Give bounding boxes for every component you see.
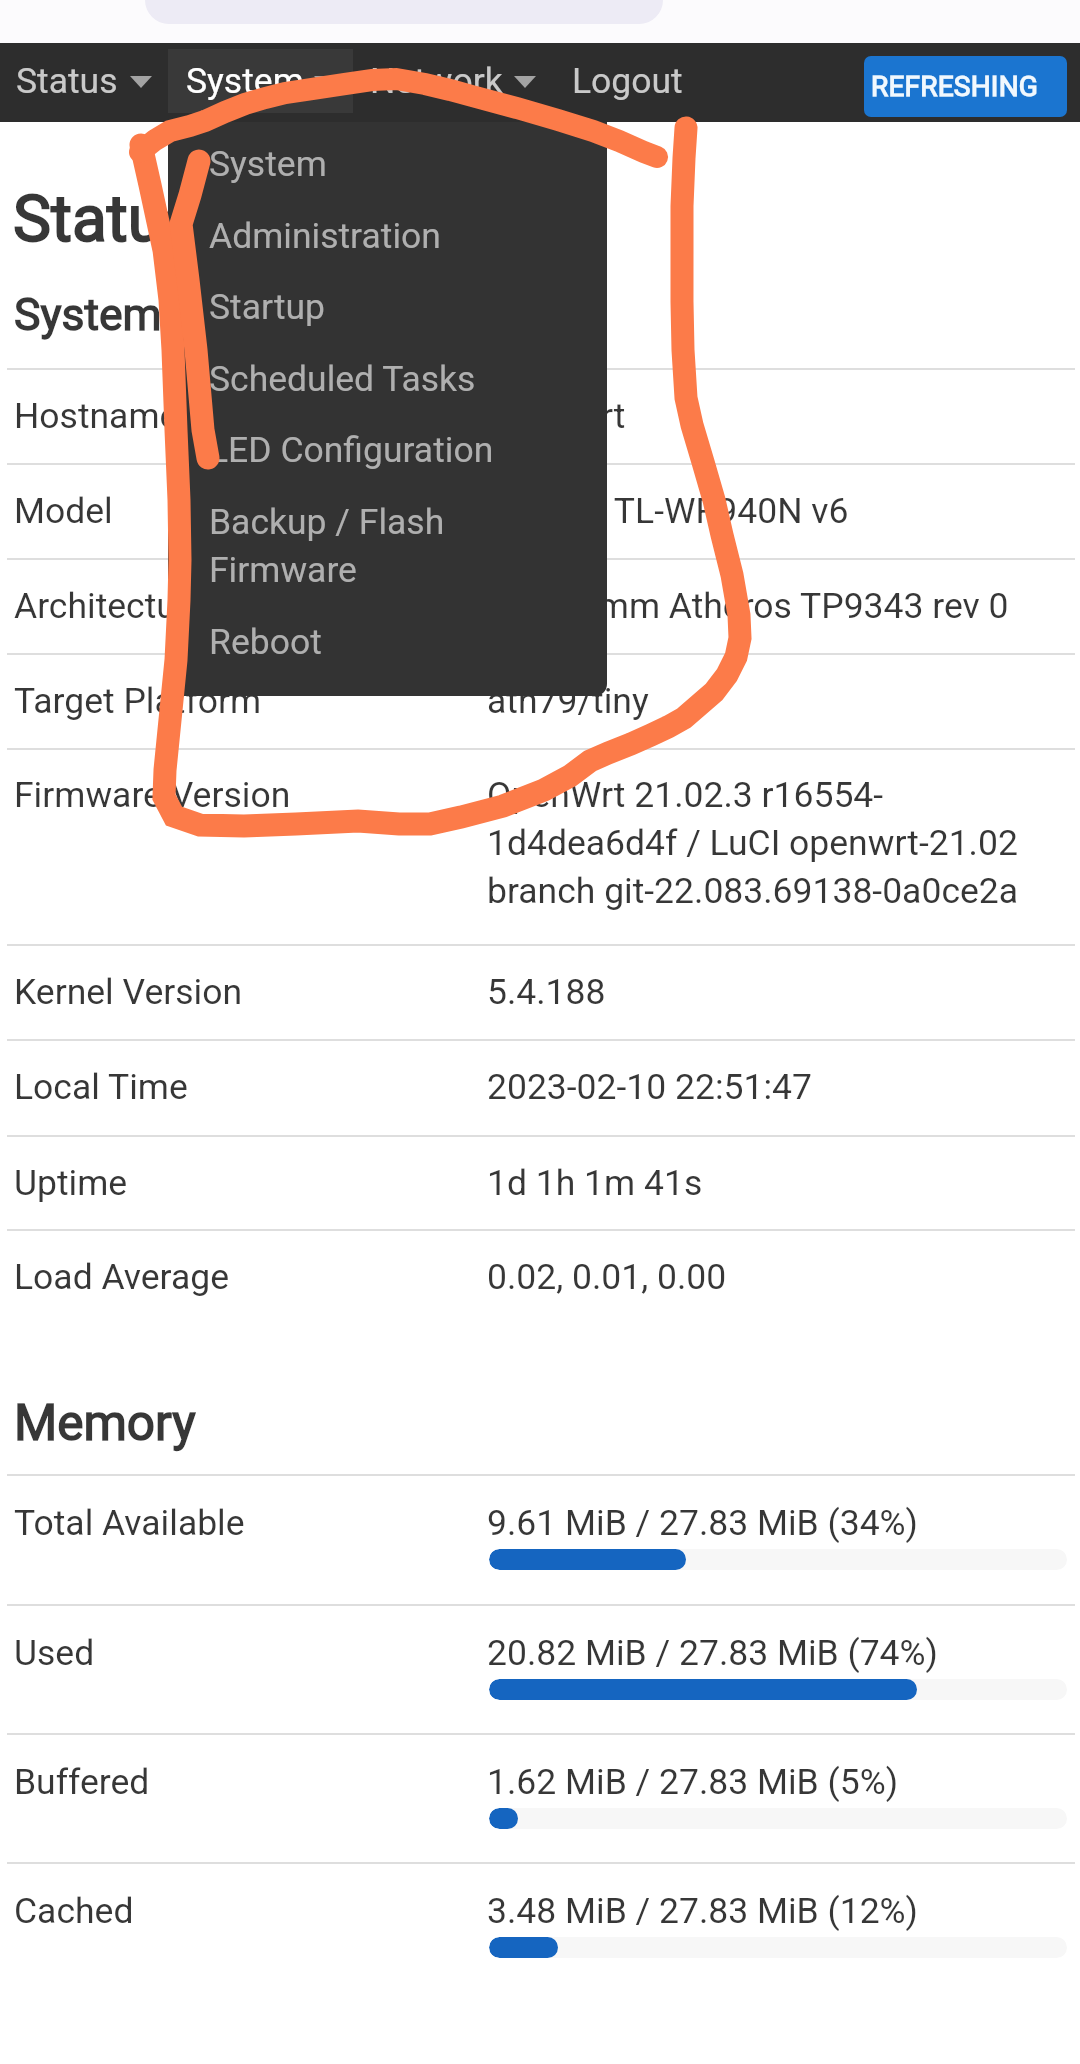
staticText: Status	[13, 182, 196, 257]
staticText: 1.62 MiB / 27.83 MiB (5%)	[487, 1761, 899, 1803]
staticText: TP-Link TL-WR940N v6	[487, 490, 849, 532]
staticText: Backup / Flash	[209, 501, 445, 543]
staticText: Logout	[572, 60, 683, 102]
staticText: 1d4dea6d4f / LuCI openwrt-21.02	[487, 822, 1018, 864]
staticText: ath79/tiny	[487, 680, 649, 722]
button[interactable]	[864, 56, 1067, 117]
button[interactable]	[553, 43, 693, 122]
staticText: LED Configuration	[209, 429, 494, 471]
staticText: System	[209, 143, 327, 185]
staticText: Used	[14, 1632, 95, 1674]
staticText: Local Time	[14, 1066, 188, 1108]
button[interactable]	[168, 43, 353, 122]
staticText: Cached	[14, 1890, 134, 1932]
staticText: Total Available	[14, 1502, 245, 1544]
staticText: Firmware Version	[14, 774, 291, 816]
staticText: Scheduled Tasks	[209, 358, 476, 400]
staticText: 3.48 MiB / 27.83 MiB (12%)	[487, 1890, 918, 1932]
button[interactable]	[168, 266, 607, 337]
staticText: OpenWrt 21.02.3 r16554-	[487, 774, 884, 816]
staticText: 0.02, 0.01, 0.00	[487, 1256, 727, 1298]
staticText: System	[186, 60, 304, 102]
staticText: 9.61 MiB / 27.83 MiB (34%)	[487, 1502, 918, 1544]
staticText: Administration	[209, 215, 441, 257]
button[interactable]	[168, 123, 607, 194]
staticText: Model	[14, 490, 113, 532]
staticText: Reboot	[209, 621, 322, 663]
button[interactable]	[168, 338, 607, 409]
staticText: Network	[370, 60, 503, 102]
button[interactable]	[353, 43, 553, 122]
staticText: Buffered	[14, 1761, 150, 1803]
staticText: Uptime	[14, 1162, 128, 1204]
other: Open menu	[130, 76, 152, 88]
staticText: 1d 1h 1m 41s	[487, 1162, 703, 1204]
button[interactable]	[168, 601, 607, 672]
staticText: Firmware	[209, 549, 357, 591]
staticText: OpenWrt	[487, 395, 626, 437]
staticText: Architecture	[14, 585, 207, 627]
staticText: 5.4.188	[487, 971, 606, 1013]
button[interactable]	[168, 481, 607, 552]
staticText: System	[14, 289, 162, 341]
button[interactable]	[0, 43, 168, 122]
staticText: 2023-02-10 22:51:47	[487, 1066, 812, 1108]
staticText: Hostname	[14, 395, 179, 437]
staticText: Memory	[14, 1394, 196, 1452]
staticText: Startup	[209, 286, 326, 328]
staticText: 20.82 MiB / 27.83 MiB (74%)	[487, 1632, 938, 1674]
staticText: Target Platform	[14, 680, 262, 722]
button[interactable]	[168, 409, 607, 480]
staticText: Kernel Version	[14, 971, 243, 1013]
staticText: REFRESHING	[871, 70, 1039, 103]
button[interactable]	[168, 529, 607, 600]
staticText: branch git-22.083.69138-0a0ce2a	[487, 870, 1019, 912]
button[interactable]	[168, 195, 607, 266]
staticText: Load Average	[14, 1256, 229, 1298]
staticText: Qualcomm Atheros TP9343 rev 0	[487, 585, 1009, 627]
other: Open menu	[314, 76, 336, 88]
other: Open menu	[514, 76, 536, 88]
staticText: Status	[16, 60, 118, 102]
